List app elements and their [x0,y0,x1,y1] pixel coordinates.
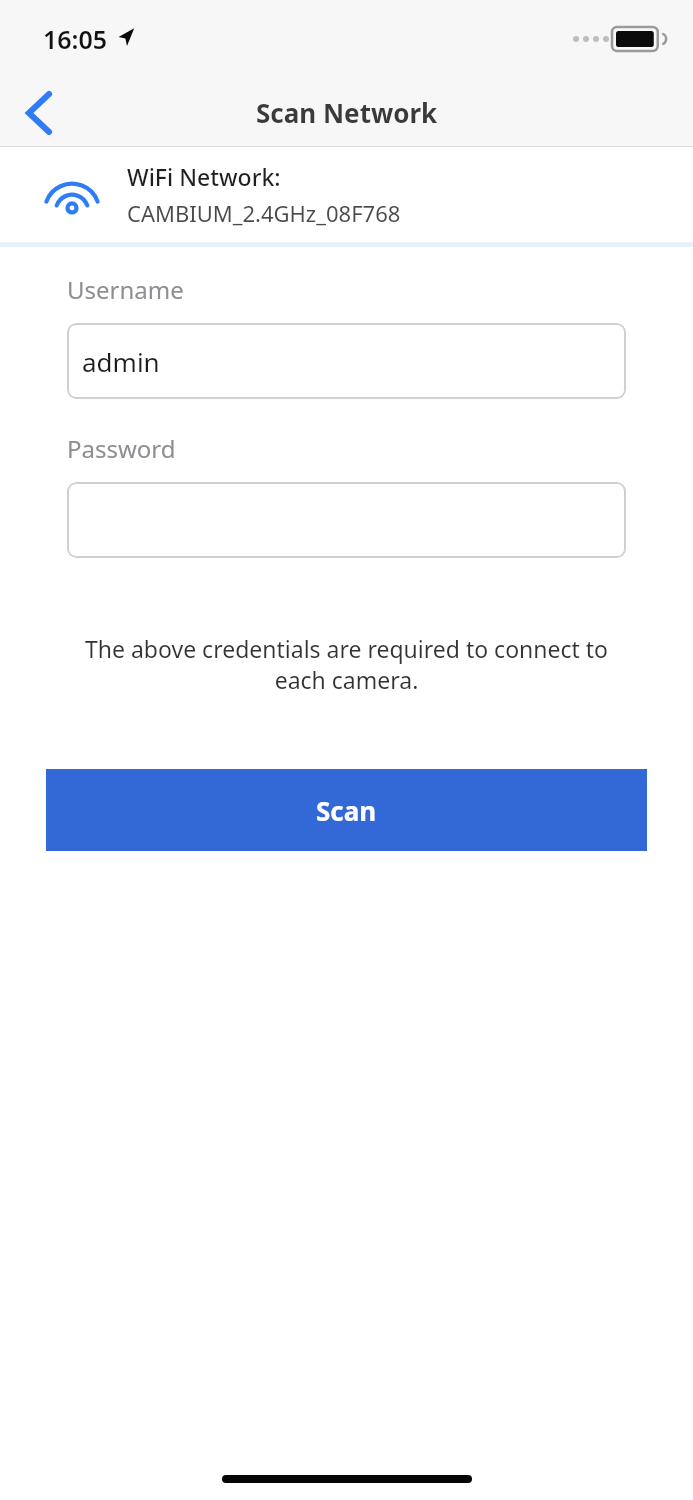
button[interactable]: Back [8,82,70,144]
staticText: 16:05 [43,22,108,56]
staticText: admin [82,344,160,379]
staticText: The above credentials are required to co… [67,633,626,696]
staticText: Scan Network [256,95,438,130]
button[interactable]: Scan [46,769,647,851]
button[interactable] [67,482,626,558]
staticText: CAMBIUM_2.4GHz_08F768 [127,198,401,228]
staticText: WiFi Network: [127,161,281,192]
staticText: Scan [316,793,377,828]
button[interactable]: admin [67,323,626,399]
staticText: Username [67,273,184,306]
button[interactable]: WiFi Network: [0,147,693,242]
staticText: Password [67,432,176,465]
